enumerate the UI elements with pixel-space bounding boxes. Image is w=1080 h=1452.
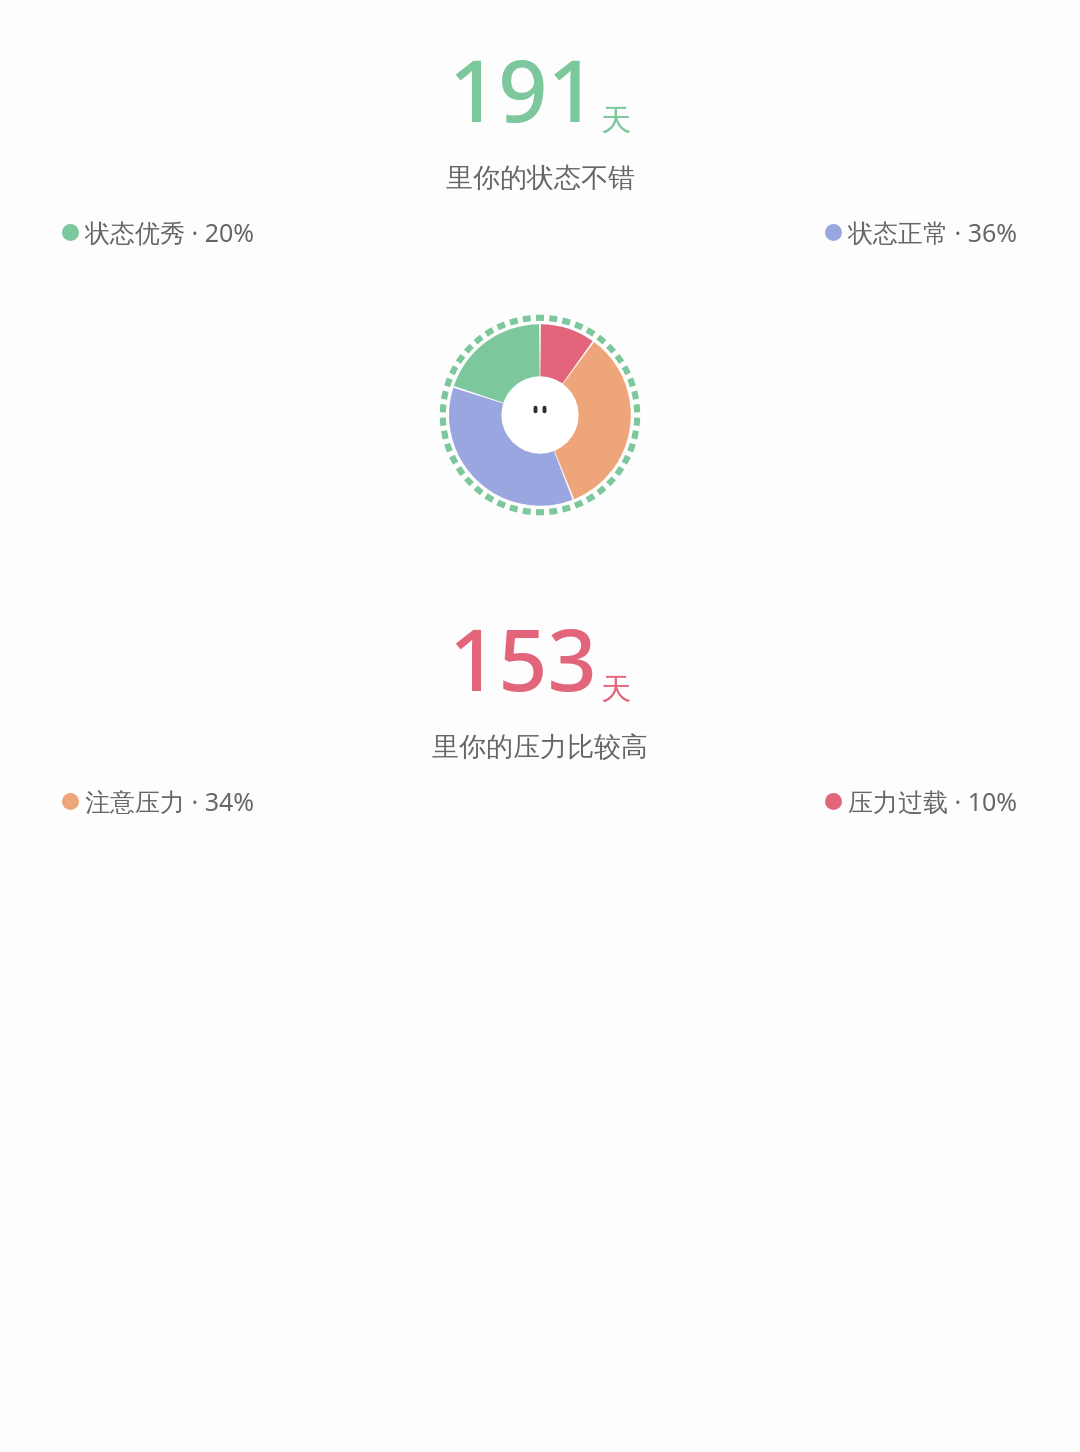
staticText: 状态优秀 · 20% xyxy=(85,215,255,249)
staticText: 里你的压力比较高 xyxy=(432,730,648,764)
button[interactable]: 153 xyxy=(449,599,631,716)
button[interactable]: 状态优秀 · 20% xyxy=(62,215,255,249)
staticText: 191 xyxy=(449,30,597,147)
button[interactable]: 191 xyxy=(449,30,631,147)
button[interactable]: 压力过载 · 10% xyxy=(825,784,1018,818)
staticText: 状态正常 · 36% xyxy=(848,215,1018,249)
button[interactable]: 注意压力 · 34% xyxy=(62,784,255,818)
staticText: 注意压力 · 34% xyxy=(85,784,255,818)
button[interactable]: 状态正常 · 36% xyxy=(825,215,1018,249)
staticText: 天 xyxy=(601,101,631,139)
staticText: 153 xyxy=(449,599,597,716)
staticText: 压力过载 · 10% xyxy=(848,784,1018,818)
button[interactable]: 状态分布图 xyxy=(440,315,640,515)
staticText: 里你的状态不错 xyxy=(446,161,635,195)
staticText: 天 xyxy=(601,670,631,708)
